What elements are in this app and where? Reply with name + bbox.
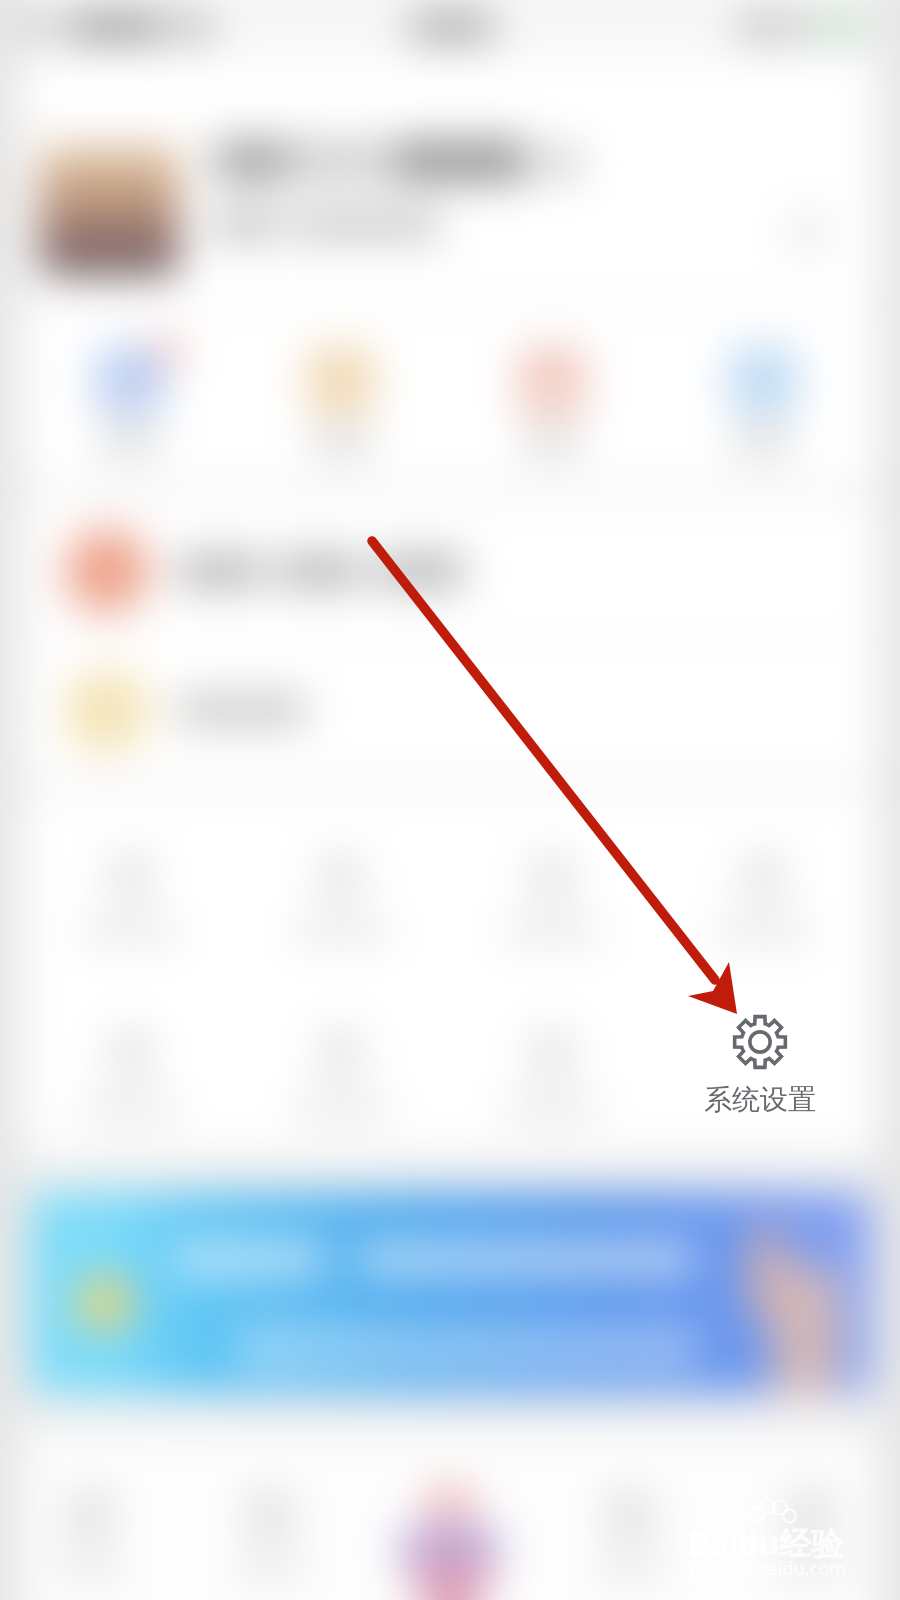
button[interactable]: 系统设置 [650, 996, 870, 1136]
staticText: jingyan.baidu.com [690, 1556, 846, 1581]
staticText: 系统设置 [650, 1082, 870, 1117]
staticText: Baidu经验 [688, 1521, 844, 1565]
